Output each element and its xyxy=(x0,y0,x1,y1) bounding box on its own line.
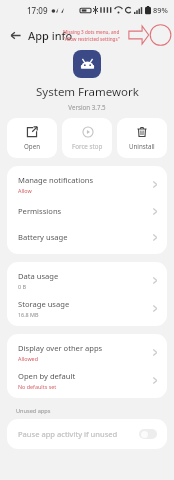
button[interactable]: Open xyxy=(7,118,57,158)
staticText: Pause app activity if unused xyxy=(18,429,139,439)
staticText: Force stop xyxy=(72,142,103,150)
staticText: Allow xyxy=(18,187,32,194)
staticText: 89% xyxy=(153,5,168,15)
button[interactable]: Pause app activity if unused xyxy=(7,419,167,449)
staticText: No defaults set xyxy=(18,383,57,390)
staticText: Version 3.7.5 xyxy=(68,103,106,111)
button[interactable]: Force stop xyxy=(62,118,112,158)
button[interactable]: Back xyxy=(6,26,24,44)
staticText: Unused apps xyxy=(16,407,51,415)
staticText: 17:09 xyxy=(27,5,48,16)
button[interactable]: Data usage xyxy=(7,266,167,294)
button[interactable]: Uninstall xyxy=(117,118,167,158)
button[interactable]: Display over other apps xyxy=(7,338,167,366)
button[interactable]: Pause app activity if unused toggle xyxy=(139,429,157,439)
button[interactable]: Battery usage xyxy=(7,224,167,250)
staticText: Display over other apps xyxy=(18,343,103,353)
staticText: Missing 3 dots menu, and xyxy=(63,29,120,35)
staticText: 16.8 MB xyxy=(18,311,39,318)
staticText: Permissions xyxy=(18,206,62,216)
button[interactable]: Open by default xyxy=(7,366,167,394)
button[interactable]: Storage usage xyxy=(7,294,167,322)
staticText: 0 B xyxy=(18,283,26,290)
button[interactable]: Permissions xyxy=(7,198,167,224)
staticText: Battery usage xyxy=(18,232,68,242)
staticText: Allowed xyxy=(18,355,38,362)
staticText: Uninstall xyxy=(129,142,155,150)
staticText: "Allow restricted settings" xyxy=(63,36,120,42)
staticText: Data usage xyxy=(18,271,59,281)
staticText: Manage notifications xyxy=(18,175,94,185)
button[interactable]: Manage notifications xyxy=(7,170,167,198)
staticText: Open xyxy=(24,142,40,150)
staticText: App info xyxy=(28,28,73,43)
staticText: Open by default xyxy=(18,371,76,381)
staticText: Storage usage xyxy=(18,299,70,309)
staticText: System Framework xyxy=(36,84,139,100)
